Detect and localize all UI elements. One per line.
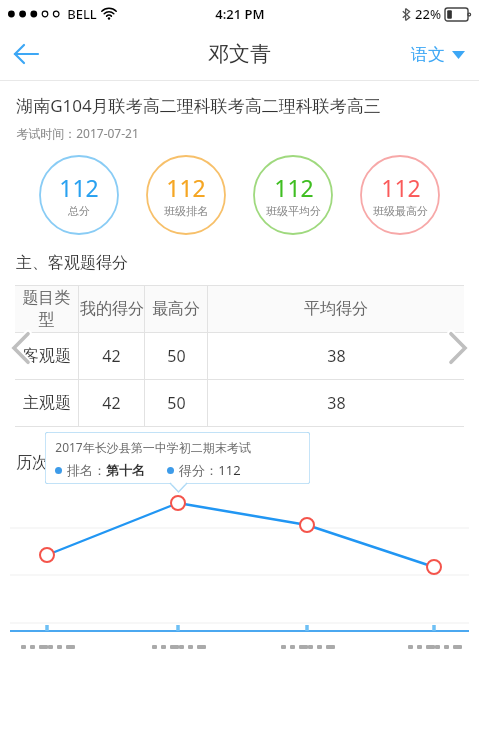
button[interactable]: Back (0, 28, 52, 80)
button[interactable]: 112 (360, 155, 440, 235)
button[interactable]: 2017年长沙县第一中学初二期末考试 (45, 432, 310, 484)
staticText: 38 (327, 345, 346, 367)
staticText: 湖南G104月联考高二理科联考高二理科联考高三 (16, 94, 381, 117)
staticText: 42 (102, 345, 121, 367)
staticText: 客观题 (23, 346, 71, 366)
staticText: 我的得分 (80, 299, 144, 319)
staticText: 班级平均分 (266, 204, 321, 218)
button[interactable]: Next (443, 327, 473, 369)
staticText: 2017年长沙县第一中学初二期末考试 (55, 439, 251, 455)
button[interactable]: Previous (6, 327, 36, 369)
staticText: 排名： (67, 462, 106, 478)
staticText: 112 (218, 461, 241, 479)
staticText: 得分： (179, 462, 218, 478)
staticText: 42 (102, 392, 121, 414)
button[interactable]: 112 (253, 155, 333, 235)
staticText: 总分 (68, 204, 90, 218)
staticText: 第十名 (106, 462, 145, 478)
staticText: 考试时间：2017-07-21 (16, 125, 139, 141)
button[interactable]: 主观题 (15, 380, 464, 426)
staticText: 50 (167, 345, 186, 367)
staticText: 平均得分 (304, 299, 368, 319)
staticText: 22% (415, 5, 441, 23)
button[interactable]: 客观题 (15, 333, 464, 379)
staticText: 历次考试成绩对比 (16, 453, 144, 473)
staticText: 112 (274, 172, 314, 203)
staticText: 50 (167, 392, 186, 414)
staticText: 邓文青 (208, 41, 271, 67)
staticText: 最高分 (152, 299, 200, 319)
button[interactable]: 112 (39, 155, 119, 235)
staticText: 班级排名 (164, 204, 208, 218)
button[interactable]: 语文 (411, 44, 465, 65)
staticText: 112 (59, 172, 99, 203)
staticText: 语文 (411, 44, 445, 65)
staticText: 题目类型 (15, 288, 78, 330)
staticText: BELL (67, 5, 97, 23)
staticText: 4:21 PM (215, 5, 265, 23)
staticText: 112 (381, 172, 421, 203)
staticText: 主观题 (23, 393, 71, 413)
staticText: 38 (327, 392, 346, 414)
staticText: 主、客观题得分 (16, 253, 128, 273)
button[interactable]: 112 (146, 155, 226, 235)
staticText: 112 (166, 172, 206, 203)
staticText: 班级最高分 (373, 204, 428, 218)
